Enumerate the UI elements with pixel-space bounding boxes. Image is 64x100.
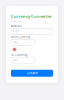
- staticText: USD: [12, 41, 17, 44]
- staticText: To Currency: [11, 53, 27, 57]
- staticText: 0.00: [12, 29, 19, 33]
- button[interactable]: EUR: [11, 57, 35, 63]
- button[interactable]: 0.00: [11, 28, 53, 34]
- staticText: Currency Converter: [11, 14, 52, 19]
- button[interactable]: Convert: [11, 70, 53, 77]
- staticText: From Currency: [11, 35, 30, 39]
- staticText: Amount: [11, 24, 22, 28]
- button[interactable]: Swap currencies: [11, 47, 17, 52]
- staticText: Convert: [26, 71, 37, 75]
- staticText: Fast exchange: [11, 21, 22, 22]
- staticText: EUR: [12, 58, 17, 62]
- button[interactable]: USD: [11, 39, 35, 45]
